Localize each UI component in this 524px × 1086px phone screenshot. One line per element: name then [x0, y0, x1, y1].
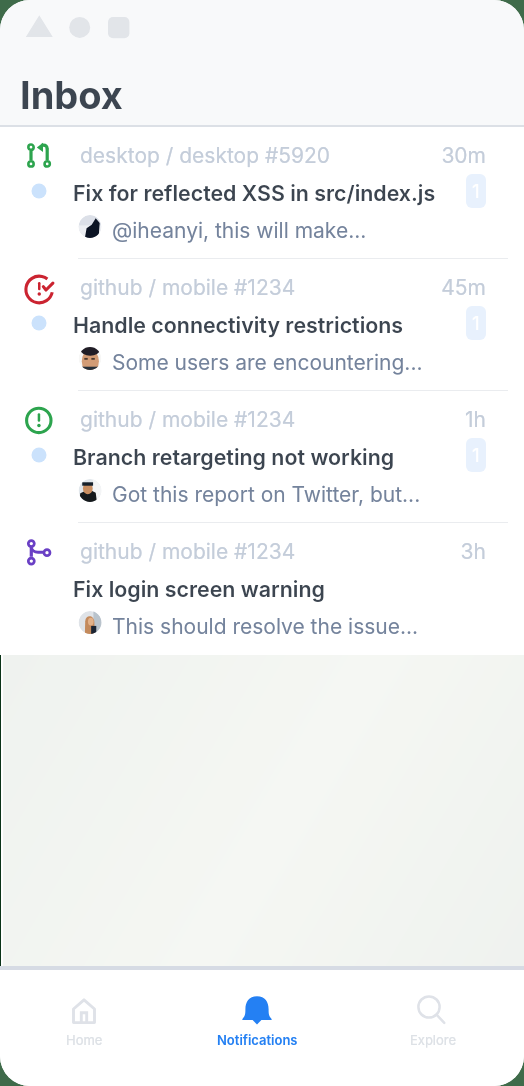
staticText: 1 — [472, 180, 480, 203]
button[interactable]: github / mobile #1234 — [0, 391, 524, 523]
staticText: github / mobile #1234 — [80, 407, 296, 432]
staticText: Fix login screen warning — [73, 576, 325, 602]
staticText: This should resolve the issue... — [112, 614, 419, 639]
staticText: 30m — [0, 143, 486, 168]
button[interactable]: Explore — [358, 970, 508, 1086]
staticText: 1 — [472, 312, 480, 335]
staticText: Some users are encountering... — [112, 350, 423, 375]
staticText: 1 — [472, 444, 480, 467]
staticText: Inbox — [20, 72, 123, 118]
staticText: Notifications — [217, 1032, 298, 1048]
staticText: Handle connectivity restrictions — [73, 312, 404, 338]
staticText: desktop / desktop #5920 — [80, 143, 331, 168]
staticText: github / mobile #1234 — [80, 275, 296, 300]
staticText: github / mobile #1234 — [80, 539, 296, 564]
button[interactable]: Notifications — [182, 970, 332, 1086]
staticText: Explore — [410, 1032, 457, 1048]
staticText: Fix for reflected XSS in src/index.js — [73, 180, 436, 206]
button[interactable]: github / mobile #1234 — [0, 523, 524, 655]
button[interactable]: desktop / desktop #5920 — [0, 127, 524, 259]
staticText: Got this report on Twitter, but... — [112, 482, 421, 507]
staticText: 45m — [0, 275, 486, 300]
staticText: 3h — [0, 539, 486, 564]
staticText: @iheanyi, this will make... — [112, 218, 367, 243]
staticText: 1h — [0, 407, 486, 432]
button[interactable]: Home — [9, 970, 159, 1086]
button[interactable]: github / mobile #1234 — [0, 259, 524, 391]
staticText: Branch retargeting not working — [73, 444, 395, 470]
staticText: Home — [66, 1032, 103, 1048]
